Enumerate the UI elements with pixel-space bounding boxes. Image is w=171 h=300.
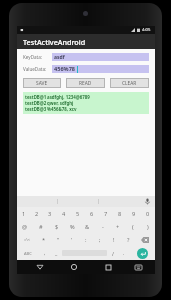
staticText: TestActiveAndroid (23, 37, 86, 47)
button[interactable]: ' (65, 233, 79, 246)
staticText: ' (71, 236, 73, 244)
staticText: 8 (118, 210, 122, 218)
button[interactable]: ) (140, 220, 155, 233)
staticText: ValueData: (23, 66, 47, 72)
button[interactable]: @ (17, 220, 33, 233)
staticText: " (57, 236, 60, 244)
button[interactable]: ( (125, 220, 140, 233)
staticText: @ (22, 223, 28, 231)
staticText: ABC (24, 251, 32, 256)
button[interactable]: # (33, 220, 49, 233)
staticText: ( (132, 223, 134, 231)
staticText: testDB@3: (25, 106, 47, 112)
staticText: asdf (54, 54, 65, 61)
button[interactable]: 0 (141, 207, 155, 220)
staticText: SAVE (36, 80, 48, 87)
staticText: 6 (90, 210, 94, 218)
staticText: - (102, 223, 104, 231)
staticText: READ (79, 80, 92, 87)
button[interactable]: , (39, 246, 51, 260)
staticText: ; (99, 236, 101, 244)
staticText: =\< (24, 237, 31, 242)
staticText: 0 (146, 210, 150, 218)
button[interactable]: 8 (113, 207, 127, 220)
staticText: # (39, 223, 43, 231)
staticText: 3 (48, 210, 52, 218)
staticText: % (70, 223, 75, 231)
staticText: 7 (104, 210, 108, 218)
staticText: KeyData: (23, 54, 43, 60)
button[interactable]: - (95, 220, 110, 233)
staticText: CLEAR (122, 80, 137, 87)
staticText: 9 (132, 210, 136, 218)
button[interactable]: : (79, 233, 93, 246)
button[interactable]: . (118, 246, 129, 260)
button[interactable]: ! (107, 233, 121, 246)
button[interactable]: $ (49, 220, 65, 233)
button[interactable]: Backspace (135, 233, 155, 246)
staticText: 1 (22, 210, 26, 218)
button[interactable]: Voice input (139, 196, 155, 207)
button[interactable]: SAVE (23, 78, 61, 88)
button[interactable]: Back (33, 260, 47, 274)
staticText: . (123, 250, 125, 257)
button[interactable]: _ (51, 246, 62, 260)
staticText: %456&78, xcv (47, 106, 77, 112)
staticText: 4:05 (142, 27, 151, 33)
button[interactable]: 6 (85, 207, 99, 220)
button[interactable]: * (37, 233, 51, 246)
staticText: _ (55, 250, 58, 257)
staticText: qwer, sdfghj (47, 100, 74, 106)
button[interactable]: ABC (17, 246, 39, 260)
button[interactable]: 3 (43, 207, 57, 220)
staticText: 5 (76, 210, 80, 218)
staticText: / (112, 250, 114, 257)
button[interactable]: & (80, 220, 95, 233)
staticText: asdfghj, 1234@6789 (47, 94, 90, 100)
button[interactable]: % (65, 220, 80, 233)
staticText: testDB@2: (25, 100, 47, 106)
button[interactable]: 2 (30, 207, 43, 220)
button[interactable]: 5 (71, 207, 85, 220)
staticText: * (42, 236, 46, 244)
button[interactable]: 4 (57, 207, 71, 220)
button[interactable]: =\< (17, 233, 37, 246)
button[interactable]: READ (66, 78, 105, 88)
button[interactable]: 1 (17, 207, 30, 220)
staticText: & (85, 223, 90, 231)
staticText: $ (55, 223, 59, 231)
button[interactable]: Recents (101, 260, 115, 274)
button[interactable]: 7 (99, 207, 113, 220)
button[interactable]: ; (93, 233, 107, 246)
staticText: ! (113, 236, 115, 244)
staticText: : (85, 236, 87, 244)
staticText: , (44, 250, 46, 257)
button[interactable]: " (51, 233, 65, 246)
staticText: ) (147, 223, 149, 231)
staticText: testDB@1: (25, 94, 47, 100)
button[interactable]: CLEAR (110, 78, 149, 88)
staticText: 4 (62, 210, 66, 218)
button[interactable]: 9 (127, 207, 141, 220)
button[interactable]: Hide keyboard (131, 260, 145, 274)
staticText: + (116, 223, 120, 231)
staticText: ? (127, 236, 130, 244)
button[interactable]: + (110, 220, 125, 233)
button[interactable]: Enter (129, 246, 155, 260)
button[interactable]: ? (121, 233, 135, 246)
button[interactable]: / (107, 246, 118, 260)
staticText: 456%78 (54, 65, 76, 73)
staticText: 2 (35, 210, 39, 218)
button[interactable]: Home (67, 260, 81, 274)
